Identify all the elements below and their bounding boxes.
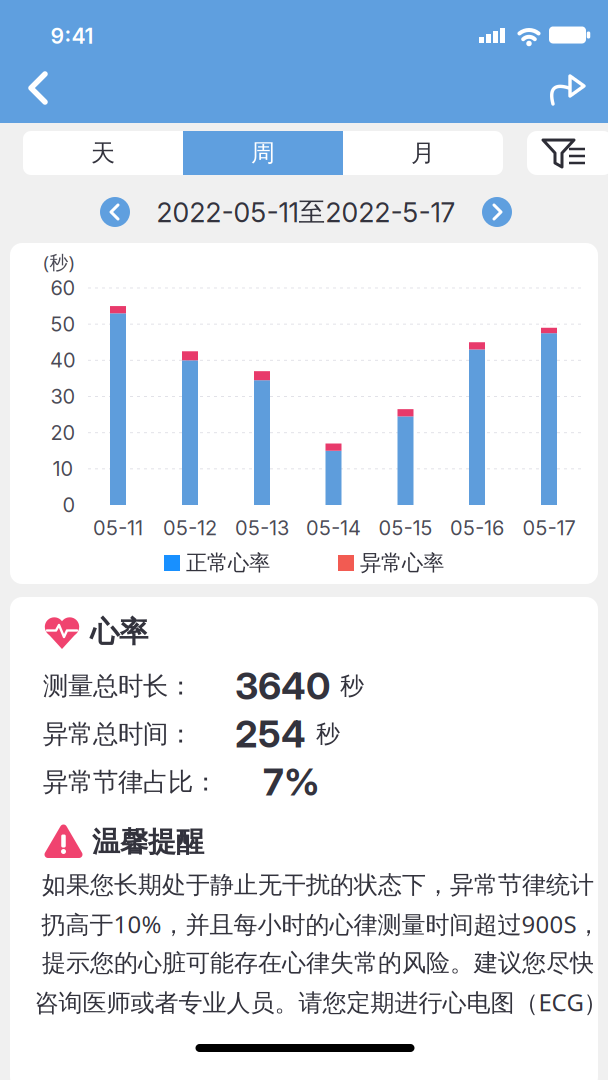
staticText: 提示您的心脏可能存在心律失常的风险。建议您尽快 [42,948,594,978]
staticText: 40 [50,348,76,372]
staticText: 扔高于10%，并且每小时的心律测量时间超过900S， [41,908,600,940]
staticText: 05-13 [235,516,289,540]
button[interactable] [16,66,60,110]
staticText: 50 [50,312,75,336]
staticText: 周 [251,138,275,168]
staticText: 05-16 [450,516,504,540]
staticText: 05-14 [306,516,361,540]
staticText: 秒 [340,671,364,701]
staticText: 秒 [316,719,340,749]
staticText: 测量总时长： [43,670,193,701]
staticText: 05-12 [163,516,217,540]
staticText: 9:41 [50,23,93,49]
staticText: 05-11 [93,516,143,540]
staticText: 254 [235,711,306,757]
staticText: 60 [50,276,75,300]
staticText: 7% [263,759,320,805]
staticText: 05-15 [378,516,432,540]
staticText: 30 [50,384,75,409]
staticText: 20 [50,421,75,445]
staticText: 咨询医师或者专业人员。请您定期进行心电图（ECG） [34,986,607,1018]
staticText: 温馨提醒 [92,825,204,859]
button[interactable]: 天 [23,131,183,175]
button[interactable] [482,197,512,227]
staticText: 异常节律占比： [43,766,218,797]
staticText: 如果您长期处于静止无干扰的状态下，异常节律统计 [42,870,594,900]
button[interactable]: 月 [343,131,503,175]
staticText: 心率 [90,614,148,650]
button[interactable]: 周 [183,131,343,175]
staticText: 0 [62,493,75,517]
staticText: 正常心率 [186,550,270,576]
staticText: 2022-05-11至2022-5-17 [156,195,455,229]
staticText: 10 [52,457,73,481]
staticText: 天 [91,138,115,168]
staticText: 月 [411,138,435,168]
button[interactable] [546,65,590,109]
button[interactable] [100,197,130,227]
button[interactable] [527,131,608,175]
staticText: 异常心率 [360,550,444,576]
staticText: 05-17 [522,516,575,540]
staticText: 异常总时间： [43,718,193,749]
staticText: (秒) [43,250,74,274]
staticText: 3640 [235,663,330,709]
